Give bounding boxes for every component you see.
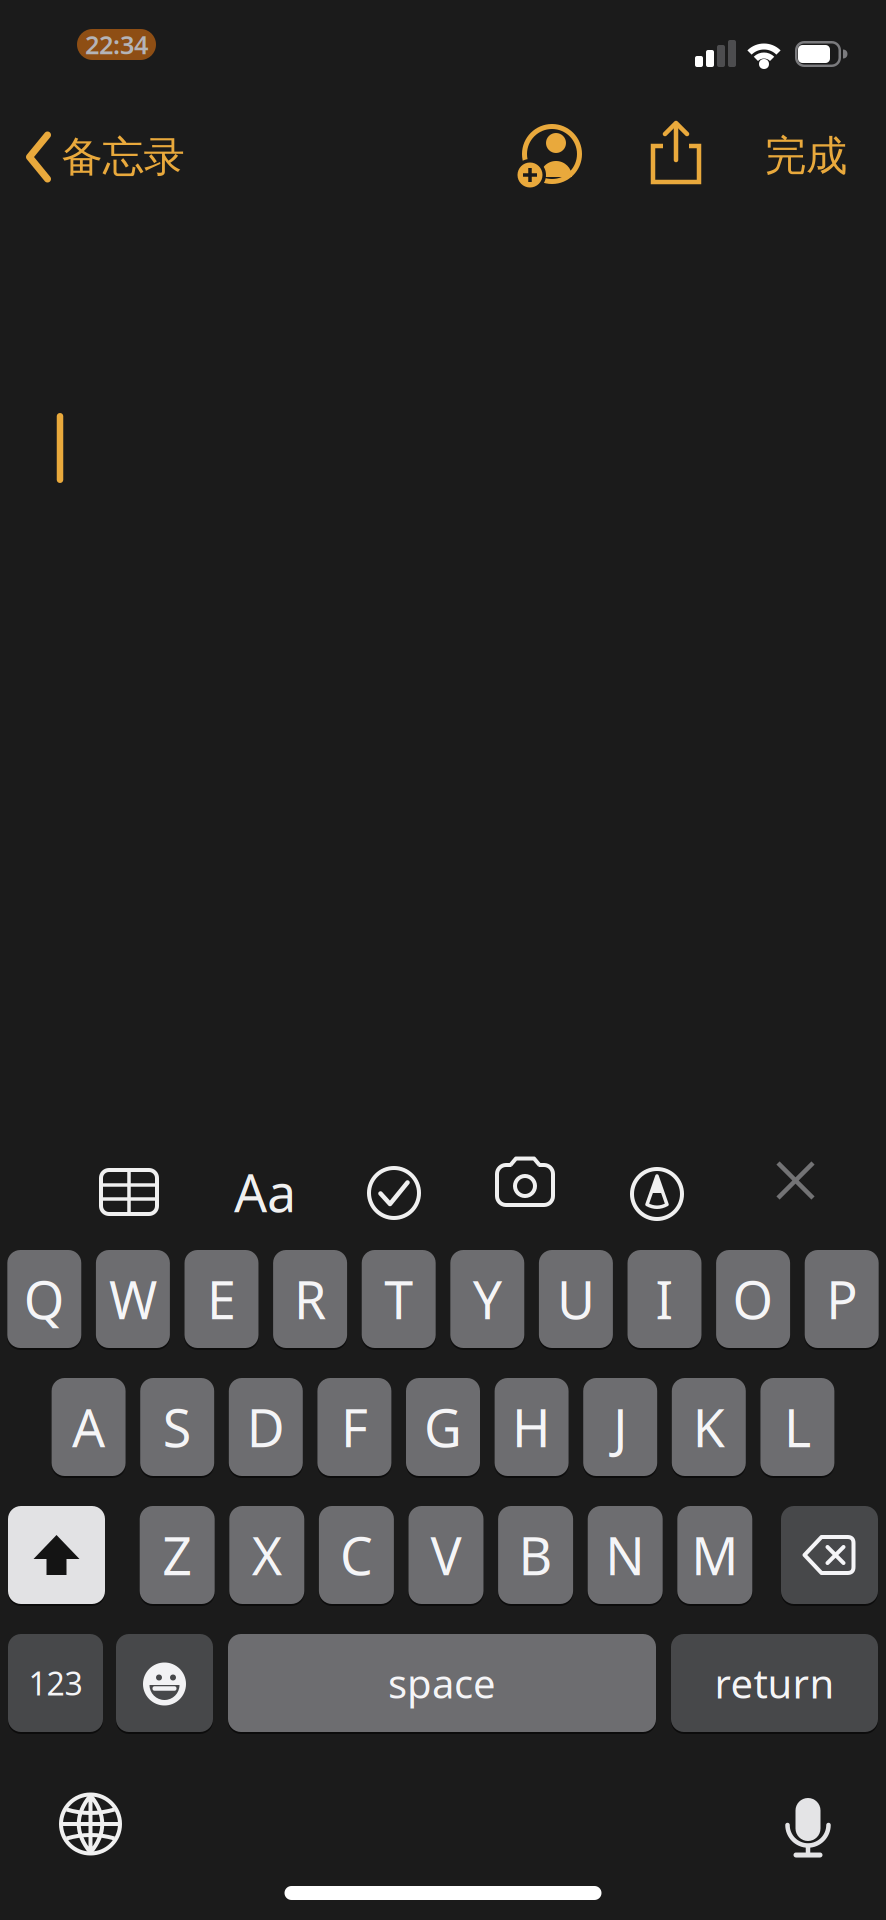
staticText: 22:34	[85, 28, 148, 61]
staticText: E	[207, 1264, 236, 1334]
button[interactable]: I	[627, 1250, 701, 1348]
button[interactable]: J	[583, 1378, 657, 1476]
staticText: R	[294, 1264, 326, 1334]
button[interactable]: Q	[7, 1250, 81, 1348]
button[interactable]: 完成	[765, 131, 847, 181]
staticText: 备忘录	[61, 132, 184, 182]
button[interactable]: C	[319, 1506, 394, 1604]
button[interactable]: 标记	[630, 1167, 684, 1221]
button[interactable]: Screen Recording	[77, 29, 156, 60]
staticText: F	[341, 1392, 368, 1462]
staticText: Z	[162, 1520, 192, 1590]
staticText: N	[605, 1520, 645, 1590]
staticText: L	[784, 1392, 811, 1462]
staticText: J	[613, 1392, 627, 1462]
button[interactable]: 备忘录	[25, 131, 184, 183]
button[interactable]: O	[716, 1250, 790, 1348]
button[interactable]: S	[140, 1378, 214, 1476]
button[interactable]: 添加联系人	[518, 125, 586, 187]
button[interactable]: H	[495, 1378, 569, 1476]
button[interactable]: G	[406, 1378, 480, 1476]
staticText: G	[424, 1392, 462, 1462]
button[interactable]: 下一个键盘	[59, 1792, 122, 1855]
staticText: D	[247, 1392, 285, 1462]
button[interactable]: 分享	[649, 120, 703, 186]
staticText: T	[384, 1264, 413, 1334]
button[interactable]: 格式	[234, 1157, 296, 1227]
staticText: M	[691, 1520, 738, 1590]
staticText: return	[714, 1656, 834, 1709]
button[interactable]: 表情符号	[116, 1634, 213, 1732]
button[interactable]: 插入表格	[99, 1168, 159, 1216]
button[interactable]: N	[588, 1506, 663, 1604]
button[interactable]: B	[498, 1506, 573, 1604]
staticText: I	[655, 1264, 673, 1334]
button[interactable]: V	[408, 1506, 483, 1604]
button[interactable]: P	[805, 1250, 879, 1348]
button[interactable]: L	[760, 1378, 834, 1476]
staticText: C	[340, 1520, 373, 1590]
button[interactable]: 关闭	[776, 1161, 815, 1200]
staticText: 完成	[765, 131, 847, 181]
button[interactable]: Y	[450, 1250, 524, 1348]
button[interactable]: 123	[8, 1634, 103, 1732]
button[interactable]: 拍照或录像	[495, 1157, 555, 1207]
button[interactable]: M	[677, 1506, 752, 1604]
staticText: W	[109, 1264, 157, 1334]
staticText: K	[693, 1392, 725, 1462]
staticText: Q	[24, 1264, 65, 1334]
staticText: Y	[473, 1264, 502, 1334]
staticText: U	[557, 1264, 595, 1334]
button[interactable]: E	[184, 1250, 258, 1348]
button[interactable]: Delete	[781, 1506, 878, 1604]
button[interactable]: F	[317, 1378, 391, 1476]
staticText: X	[252, 1520, 282, 1590]
staticText: P	[826, 1264, 857, 1334]
button[interactable]: D	[229, 1378, 303, 1476]
staticText: B	[519, 1520, 553, 1590]
button[interactable]: Z	[140, 1506, 215, 1604]
staticText: H	[512, 1392, 551, 1462]
button[interactable]: W	[96, 1250, 170, 1348]
button[interactable]: X	[229, 1506, 304, 1604]
button[interactable]: return	[671, 1634, 878, 1732]
button[interactable]: Shift	[8, 1506, 105, 1604]
button[interactable]: R	[273, 1250, 347, 1348]
button[interactable]: 核对清单	[367, 1166, 421, 1220]
staticText: Aa	[234, 1157, 296, 1227]
staticText: O	[733, 1264, 774, 1334]
staticText: space	[388, 1656, 496, 1709]
staticText: 123	[28, 1662, 82, 1704]
button[interactable]: U	[539, 1250, 613, 1348]
button[interactable]: space	[228, 1634, 656, 1732]
button[interactable]: A	[52, 1378, 126, 1476]
button[interactable]: T	[362, 1250, 436, 1348]
button[interactable]: K	[672, 1378, 746, 1476]
staticText: A	[72, 1392, 105, 1462]
button[interactable]: 听写	[786, 1792, 830, 1858]
staticText: V	[430, 1520, 461, 1590]
staticText: S	[163, 1392, 192, 1462]
